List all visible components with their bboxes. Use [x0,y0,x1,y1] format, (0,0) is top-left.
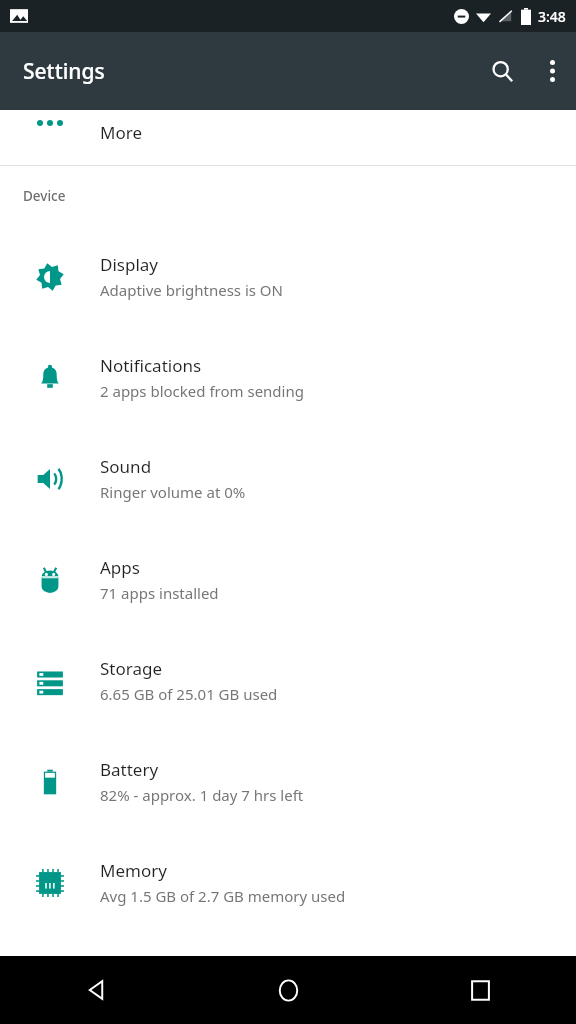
staticText: 3:48 [538,7,566,26]
button[interactable]: Display [0,226,576,327]
button[interactable]: Search [476,45,528,97]
button[interactable]: Recent apps [384,956,576,1024]
button[interactable]: Battery [0,731,576,832]
staticText: Memory [100,859,167,882]
staticText: Storage [100,657,163,680]
staticText: Device [23,187,66,205]
staticText: Display [100,253,158,276]
staticText: 2 apps blocked from sending [100,381,304,401]
button[interactable]: Home [192,956,384,1024]
staticText: Settings [23,57,105,86]
staticText: Sound [100,455,152,478]
staticText: Avg 1.5 GB of 2.7 GB memory used [100,886,346,906]
button[interactable]: Memory [0,832,576,933]
button[interactable]: Notifications [0,327,576,428]
button[interactable]: Sound [0,428,576,529]
button[interactable]: Back [0,956,192,1024]
staticText: 71 apps installed [100,583,219,603]
staticText: Battery [100,758,159,781]
button[interactable]: More [0,110,576,148]
button[interactable]: Storage [0,630,576,731]
staticText: Notifications [100,354,202,377]
staticText: Ringer volume at 0% [100,482,246,502]
staticText: 82% - approx. 1 day 7 hrs left [100,785,304,805]
button[interactable]: More options [528,47,576,95]
staticText: 6.65 GB of 25.01 GB used [100,684,278,704]
staticText: Apps [100,556,140,579]
staticText: More [100,121,142,144]
button[interactable]: Apps [0,529,576,630]
staticText: Adaptive brightness is ON [100,280,283,300]
